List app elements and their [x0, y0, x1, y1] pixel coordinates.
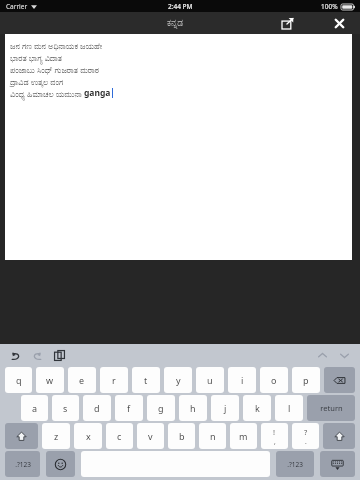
- button[interactable]: f: [115, 395, 143, 421]
- staticText: v: [148, 430, 153, 442]
- button[interactable]: s: [52, 395, 79, 421]
- button[interactable]: Previous: [311, 344, 333, 366]
- button[interactable]: m: [230, 423, 257, 449]
- button[interactable]: Shift: [323, 423, 355, 449]
- button[interactable]: k: [243, 395, 271, 421]
- staticText: return: [320, 403, 343, 413]
- staticText: o: [271, 374, 277, 386]
- staticText: Carrier: [6, 2, 28, 11]
- staticText: u: [207, 374, 213, 386]
- button[interactable]: h: [179, 395, 207, 421]
- staticText: !: [273, 427, 276, 437]
- staticText: a: [32, 402, 38, 414]
- button[interactable]: Shift: [5, 423, 38, 449]
- button[interactable]: l: [275, 395, 303, 421]
- button[interactable]: Paste: [48, 344, 70, 366]
- staticText: f: [127, 402, 131, 414]
- button[interactable]: u: [196, 367, 224, 393]
- button[interactable]: Hide keyboard: [320, 451, 355, 477]
- staticText: b: [179, 430, 185, 442]
- button[interactable]: a: [21, 395, 48, 421]
- button[interactable]: r: [100, 367, 128, 393]
- staticText: y: [176, 374, 181, 386]
- staticText: p: [303, 374, 309, 386]
- button[interactable]: d: [83, 395, 111, 421]
- button[interactable]: ಜನ ಗಣ ಮನ ಅಧಿನಾಯಕ ಜಯಹೇ: [5, 34, 352, 260]
- button[interactable]: ?: [292, 423, 319, 449]
- button[interactable]: p: [292, 367, 320, 393]
- staticText: k: [255, 402, 260, 414]
- button[interactable]: w: [36, 367, 64, 393]
- button[interactable]: x: [74, 423, 102, 449]
- button[interactable]: .?123: [5, 451, 40, 477]
- button[interactable]: q: [5, 367, 32, 393]
- button[interactable]: Emoji: [46, 451, 75, 477]
- staticText: 2:44 PM: [168, 2, 193, 11]
- button[interactable]: !: [261, 423, 288, 449]
- staticText: x: [86, 430, 91, 442]
- staticText: ದ್ರಾವಿಡ ಉತ್ಕಲ ವಂಗ: [10, 76, 64, 87]
- button[interactable]: Redo: [26, 344, 48, 366]
- staticText: ಭಾರತ ಭಾಗ್ಯ ವಿದಾತ: [10, 52, 63, 63]
- button[interactable]: v: [137, 423, 164, 449]
- staticText: h: [190, 402, 196, 414]
- staticText: ವಿಂಧ್ಯ ಹಿಮಾಚಲ ಯಮುನಾ: [10, 88, 84, 99]
- button[interactable]: Close: [326, 12, 352, 34]
- button[interactable]: g: [147, 395, 175, 421]
- staticText: ಜನ ಗಣ ಮನ ಅಧಿನಾಯಕ ಜಯಹೇ: [10, 40, 103, 51]
- button[interactable]: Share: [274, 12, 300, 34]
- staticText: q: [16, 374, 22, 386]
- staticText: .: [305, 437, 307, 446]
- button[interactable]: i: [228, 367, 256, 393]
- staticText: m: [239, 430, 248, 442]
- staticText: ,: [274, 437, 276, 446]
- staticText: e: [79, 374, 85, 386]
- button[interactable]: y: [164, 367, 192, 393]
- staticText: c: [117, 430, 122, 442]
- staticText: r: [112, 374, 116, 386]
- staticText: ಪಂಜಾಬು ಸಿಂಧ್ ಗುಜರಾತ ಮರಾಠ: [10, 64, 100, 75]
- button[interactable]: n: [199, 423, 226, 449]
- staticText: z: [54, 430, 59, 442]
- staticText: t: [144, 374, 148, 386]
- staticText: s: [63, 402, 68, 414]
- staticText: l: [288, 402, 291, 414]
- button[interactable]: z: [42, 423, 70, 449]
- staticText: .?123: [287, 460, 303, 469]
- button[interactable]: .?123: [276, 451, 314, 477]
- button[interactable]: e: [68, 367, 96, 393]
- staticText: ಕನ್ನಡ: [167, 19, 184, 28]
- button[interactable]: t: [132, 367, 160, 393]
- button[interactable]: return: [307, 395, 355, 421]
- button[interactable]: j: [211, 395, 239, 421]
- staticText: ganga: [84, 87, 111, 99]
- staticText: j: [224, 402, 227, 414]
- staticText: d: [94, 402, 100, 414]
- staticText: .?123: [15, 460, 31, 469]
- button[interactable]: Undo: [4, 344, 26, 366]
- button[interactable]: Backspace: [324, 367, 355, 393]
- button[interactable]: o: [260, 367, 288, 393]
- staticText: w: [46, 374, 54, 386]
- button[interactable]: Next: [333, 344, 355, 366]
- button[interactable]: c: [106, 423, 133, 449]
- staticText: g: [158, 402, 164, 414]
- staticText: n: [210, 430, 216, 442]
- staticText: i: [241, 374, 244, 386]
- button[interactable]: b: [168, 423, 195, 449]
- staticText: 100%: [321, 2, 338, 11]
- staticText: ?: [304, 427, 308, 437]
